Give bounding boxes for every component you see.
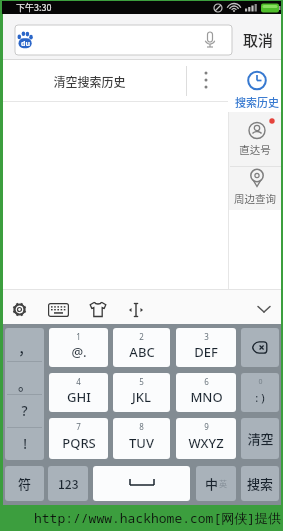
button[interactable] <box>228 60 281 112</box>
button[interactable]: 搜索 <box>241 466 279 501</box>
staticText: 2 <box>139 331 144 340</box>
staticText: 6 <box>204 376 209 385</box>
staticText: 直达号 <box>239 142 271 155</box>
button[interactable] <box>6 296 34 324</box>
button[interactable] <box>93 466 190 501</box>
staticText: du <box>21 39 30 49</box>
staticText: 周边查询 <box>234 191 276 204</box>
staticText: TUV <box>129 434 154 452</box>
staticText: 0 <box>258 377 263 386</box>
button[interactable] <box>3 60 228 102</box>
staticText: GHI <box>67 388 91 406</box>
button[interactable] <box>15 25 232 55</box>
staticText: 取消 <box>243 29 274 51</box>
staticText: http://www.hackhome.com[网侠]提供 <box>34 509 282 527</box>
staticText: 3 <box>204 331 209 340</box>
staticText: 1 <box>76 331 81 340</box>
button[interactable] <box>228 112 281 166</box>
staticText: ? <box>21 402 28 420</box>
button[interactable] <box>241 418 279 459</box>
button[interactable]: 取消 <box>236 22 280 58</box>
button[interactable] <box>45 296 73 324</box>
staticText: 符 <box>18 474 32 493</box>
button[interactable] <box>5 328 44 460</box>
staticText: PQRS <box>62 434 96 452</box>
button[interactable]: 123 <box>48 466 88 501</box>
staticText: ， <box>18 338 32 358</box>
button[interactable]: 符 <box>5 466 44 501</box>
staticText: DEF <box>194 343 218 361</box>
button[interactable] <box>122 296 150 324</box>
button[interactable] <box>176 418 236 459</box>
staticText: ! <box>23 435 27 453</box>
button[interactable] <box>113 328 170 367</box>
button[interactable] <box>241 328 279 367</box>
staticText: 搜索 <box>247 474 274 493</box>
button[interactable] <box>49 418 108 459</box>
staticText: 4 <box>76 376 81 385</box>
staticText: 8 <box>139 421 144 430</box>
button[interactable] <box>192 60 228 102</box>
button[interactable] <box>49 328 108 367</box>
staticText: ABC <box>129 343 155 361</box>
staticText: 搜索历史 <box>235 94 279 108</box>
staticText: 。 <box>18 374 32 394</box>
button[interactable]: 中 <box>196 466 236 501</box>
button[interactable] <box>241 373 279 412</box>
staticText: MNO <box>190 388 223 406</box>
staticText: WXYZ <box>188 434 224 452</box>
staticText: 9 <box>204 421 209 430</box>
staticText: 中 <box>205 474 219 493</box>
staticText: 5 <box>139 376 144 385</box>
staticText: 7 <box>76 421 81 430</box>
button[interactable] <box>49 373 108 412</box>
staticText: JKL <box>132 388 151 406</box>
button[interactable] <box>228 166 281 220</box>
staticText: 清空搜索历史 <box>53 73 126 90</box>
staticText: 英 <box>219 478 227 490</box>
button[interactable] <box>113 373 170 412</box>
staticText: : ) <box>255 390 265 405</box>
button[interactable] <box>84 296 112 324</box>
button[interactable] <box>113 418 170 459</box>
staticText: @. <box>71 343 87 361</box>
button[interactable] <box>250 296 278 324</box>
button[interactable] <box>176 373 236 412</box>
staticText: 下午3:30 <box>16 1 52 14</box>
button[interactable] <box>176 328 236 367</box>
staticText: 123 <box>58 475 79 492</box>
staticText: 清空 <box>247 429 274 448</box>
